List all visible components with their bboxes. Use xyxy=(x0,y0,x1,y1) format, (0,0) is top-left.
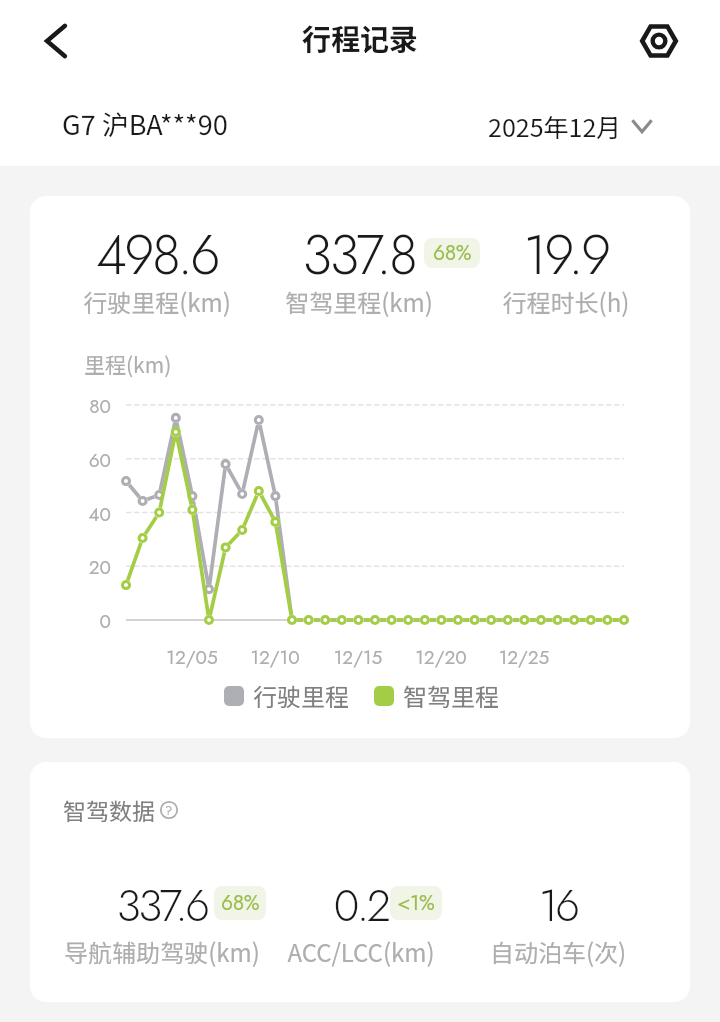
staticText: 40 xyxy=(66,501,111,528)
staticText: 0.2 xyxy=(211,874,511,938)
button[interactable]: 智驾里程 xyxy=(374,678,499,713)
staticText: 0 xyxy=(66,608,111,635)
staticText: 337.6 xyxy=(30,874,312,938)
staticText: 导航辅助驾驶(km) xyxy=(30,934,312,969)
staticText: 20 xyxy=(66,554,111,581)
staticText: 12/20 xyxy=(391,644,491,671)
staticText: 12/15 xyxy=(308,644,408,671)
staticText: 16 xyxy=(408,874,690,938)
staticText: 12/10 xyxy=(225,644,325,671)
staticText: 80 xyxy=(66,393,111,420)
button[interactable]: 行驶里程 xyxy=(224,678,349,713)
staticText: 行程记录 xyxy=(0,16,720,58)
staticText: 智驾里程 xyxy=(403,678,499,713)
staticText: <1% xyxy=(397,888,435,918)
button[interactable]: 2025年12月 xyxy=(480,100,662,152)
staticText: 68% xyxy=(433,238,472,268)
staticText: ? xyxy=(165,801,173,820)
staticText: 智驾数据 xyxy=(63,793,155,826)
button[interactable]: 行驶里程 xyxy=(224,678,499,713)
staticText: 行驶里程 xyxy=(253,678,349,713)
staticText: 68% xyxy=(221,888,260,918)
staticText: 2025年12月 xyxy=(488,108,622,144)
button[interactable]: Back xyxy=(26,13,82,69)
button[interactable]: Settings xyxy=(631,13,687,69)
staticText: ACC/LCC(km) xyxy=(211,934,511,969)
staticText: 12/05 xyxy=(142,644,242,671)
staticText: 自动泊车(次) xyxy=(408,934,690,969)
staticText: G7 沪BA***90 xyxy=(62,104,228,143)
staticText: 337.8 xyxy=(209,216,509,294)
staticText: 行程时长(h) xyxy=(416,284,690,319)
staticText: 里程(km) xyxy=(84,349,172,379)
staticText: 12/25 xyxy=(474,644,574,671)
staticText: 60 xyxy=(66,447,111,474)
button[interactable]: 智驾数据 xyxy=(61,791,181,828)
staticText: 行驶里程(km) xyxy=(30,284,307,319)
staticText: 智驾里程(km) xyxy=(209,284,509,319)
staticText: 19.9 xyxy=(416,216,690,294)
staticText: 498.6 xyxy=(30,216,307,294)
